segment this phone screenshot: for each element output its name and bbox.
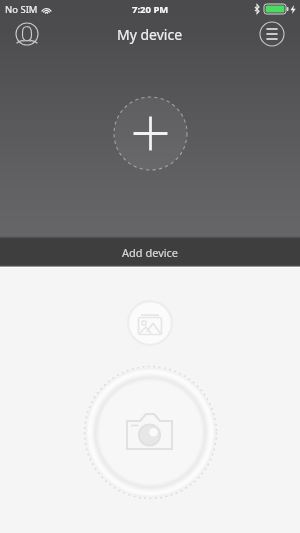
staticText: Add device [122,245,179,260]
staticText: 7:20 PM [132,3,169,16]
button[interactable]: Gallery [127,300,173,346]
button[interactable]: Take photo [82,364,219,501]
button[interactable]: Menu [259,21,285,47]
button[interactable]: Add device [112,95,189,172]
staticText: No SIM [5,3,38,16]
button[interactable]: Profile [15,22,39,46]
button[interactable]: Add device [0,239,300,265]
staticText: My device [117,25,183,44]
